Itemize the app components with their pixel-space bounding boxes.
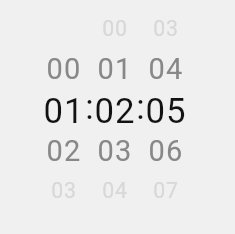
staticText: 03 [153,16,179,41]
staticText: 03 [51,178,77,203]
staticText: 03 [97,134,133,168]
staticText: : [136,87,145,128]
staticText: 00 [46,52,82,86]
staticText: 02 [94,91,136,132]
staticText: : [85,87,94,128]
staticText: 04 [102,178,128,203]
staticText: 05 [145,91,187,132]
staticText: 01 [97,52,133,86]
staticText: 00 [102,16,128,41]
staticText: 07 [153,178,179,203]
staticText: 01 [43,91,85,132]
staticText: 04 [148,52,184,86]
staticText: 06 [148,134,184,168]
staticText: 02 [46,134,82,168]
